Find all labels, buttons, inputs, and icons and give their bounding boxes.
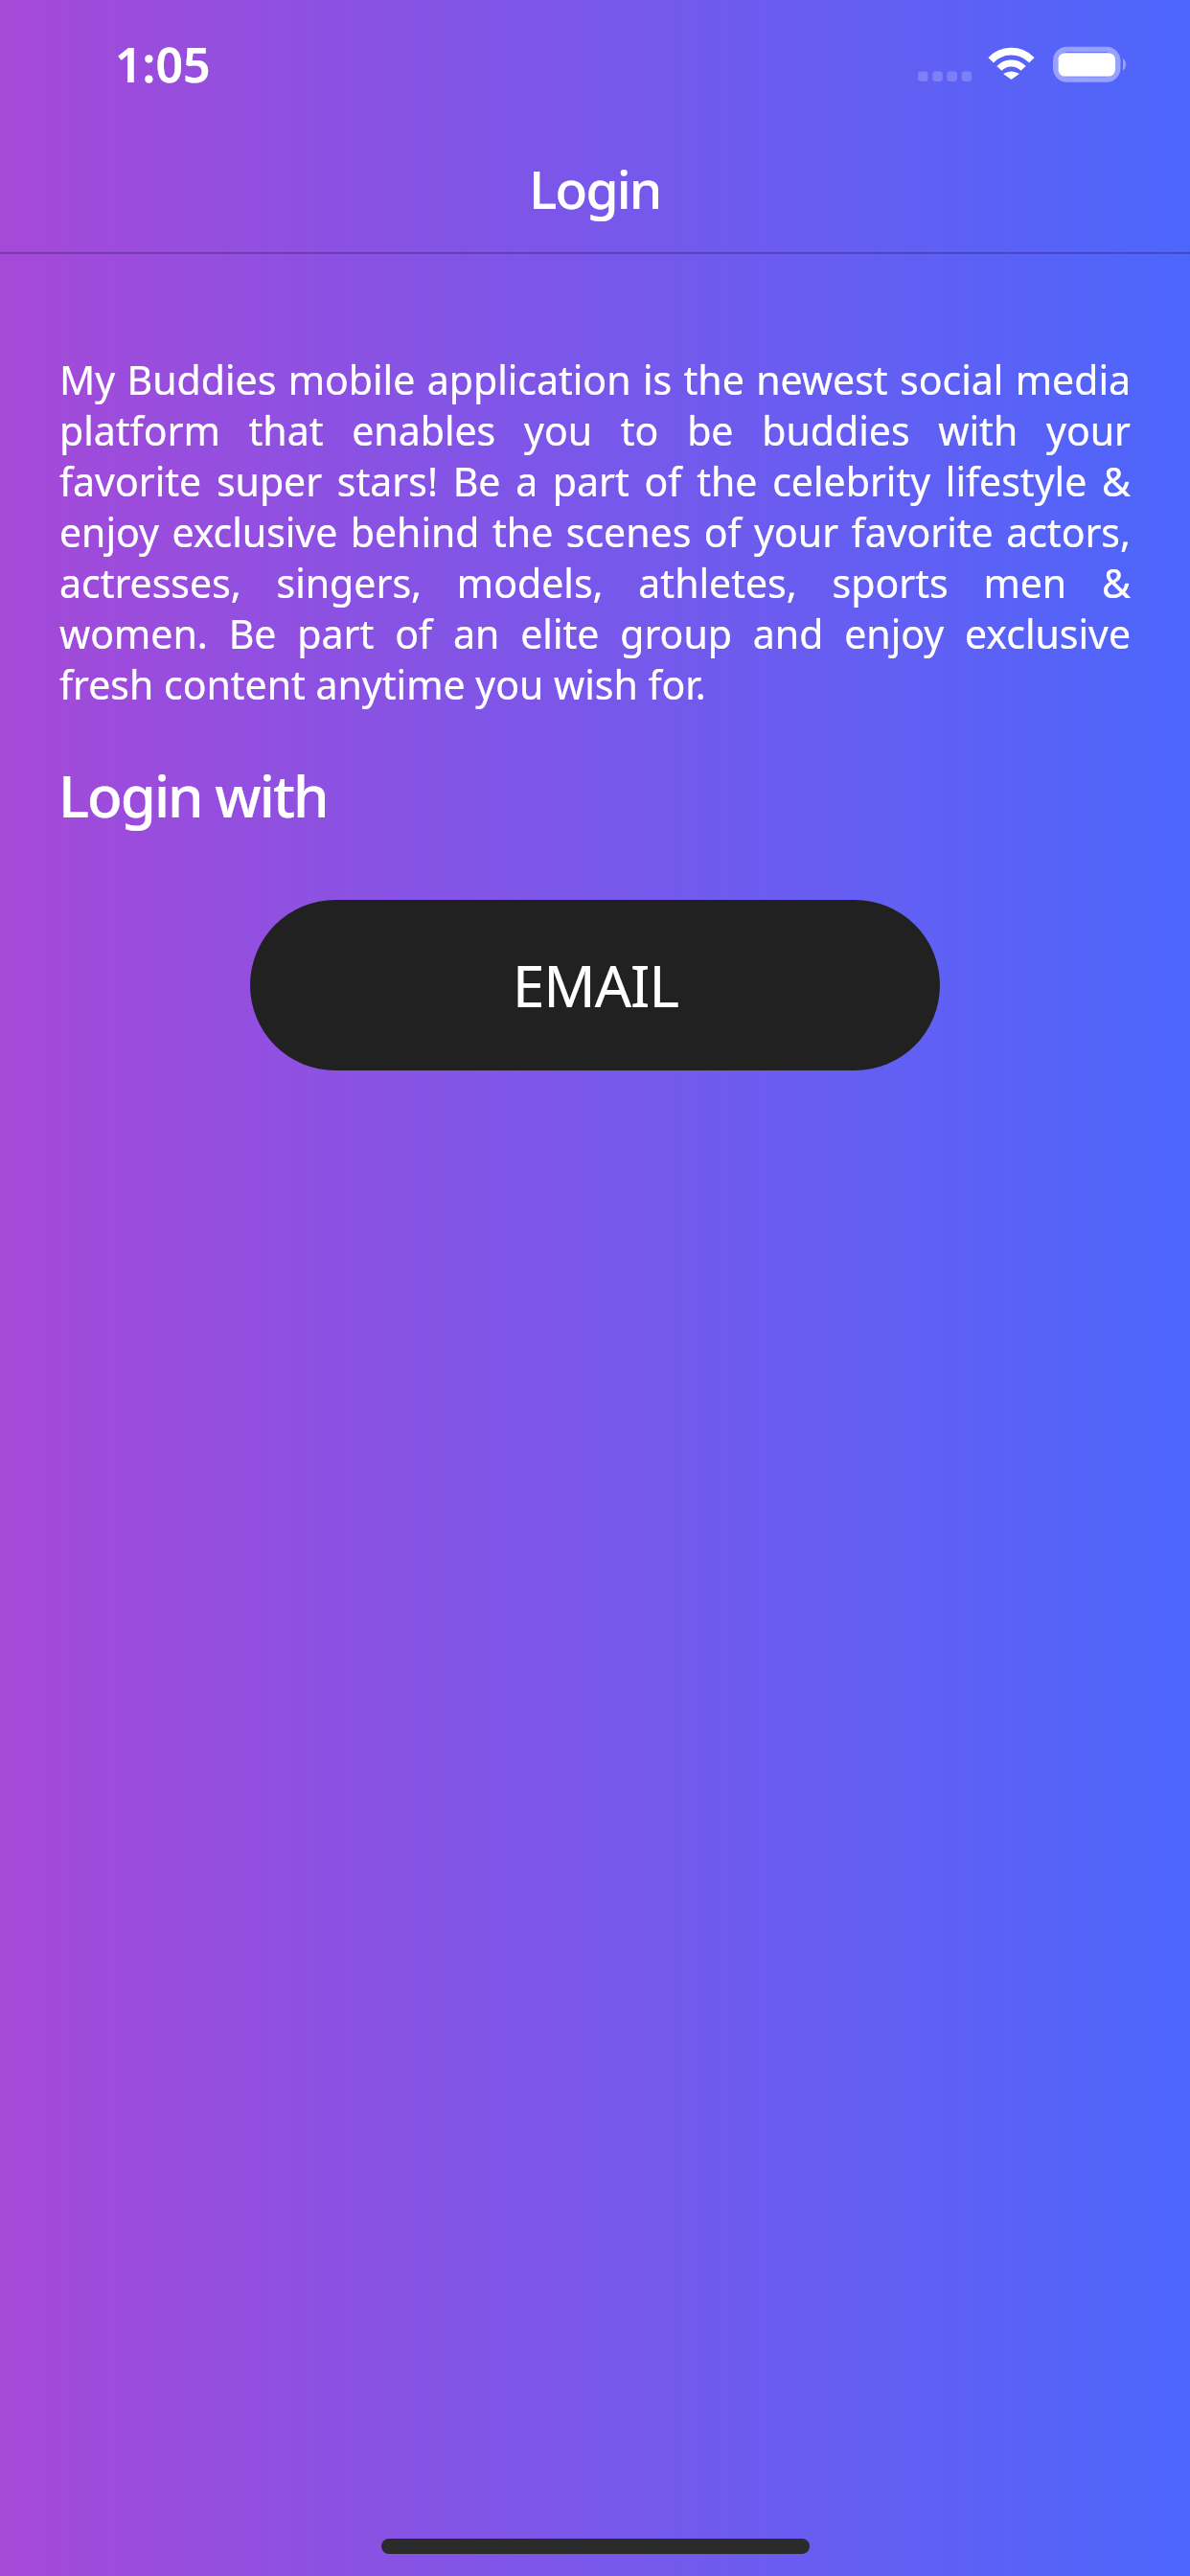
staticText: Login with <box>58 756 328 835</box>
staticText: My Buddies mobile application is the new… <box>59 353 1131 711</box>
other: Signal, Wi-Fi and battery status <box>910 42 1128 85</box>
staticText: Login <box>529 152 661 224</box>
other: Home indicator <box>381 2539 810 2554</box>
staticText: EMAIL <box>513 946 678 1024</box>
button[interactable]: EMAIL <box>250 900 940 1070</box>
staticText: 1:05 <box>115 32 211 97</box>
